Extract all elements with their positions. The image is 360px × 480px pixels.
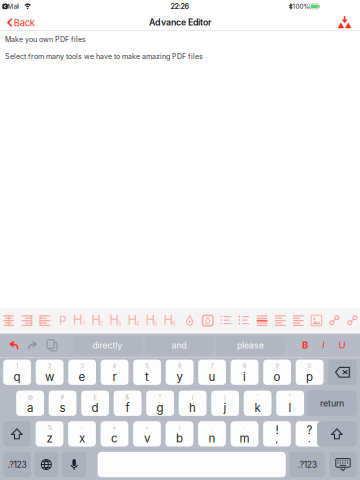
staticText: x xyxy=(79,431,85,445)
staticText: H xyxy=(127,312,137,328)
button[interactable]: - xyxy=(68,421,96,446)
button[interactable]: Shift xyxy=(317,421,357,446)
button[interactable]: ; xyxy=(198,421,226,446)
button[interactable]: Format option 5 xyxy=(73,310,90,331)
staticText: 4 xyxy=(113,363,117,370)
button[interactable]: Hide keyboard xyxy=(329,452,357,477)
button[interactable]: Next keyboard xyxy=(34,452,58,477)
button[interactable]: Numbers xyxy=(3,452,31,477)
button[interactable]: Shift xyxy=(3,421,31,446)
staticText: " xyxy=(289,394,292,401)
button[interactable]: and xyxy=(145,336,213,355)
button[interactable]: Return xyxy=(307,391,357,416)
staticText: r xyxy=(113,370,117,384)
staticText: % xyxy=(47,424,52,431)
button[interactable]: ( xyxy=(179,391,206,416)
staticText: # xyxy=(61,394,65,401)
staticText: i xyxy=(243,370,246,384)
staticText: 3 xyxy=(81,363,84,370)
button[interactable]: 3 xyxy=(68,360,96,385)
button[interactable]: # xyxy=(49,391,76,416)
button[interactable]: Format option 7 xyxy=(109,310,126,331)
button[interactable]: ) xyxy=(211,391,239,416)
button[interactable]: Format option 4 xyxy=(54,310,71,331)
button[interactable]: = xyxy=(133,421,161,446)
button[interactable]: & xyxy=(114,391,141,416)
button[interactable]: Undo xyxy=(4,336,22,354)
staticText: + xyxy=(112,424,116,431)
staticText: v xyxy=(144,431,150,445)
button[interactable]: Format option 20 xyxy=(344,310,360,331)
button[interactable]: U xyxy=(334,336,350,354)
staticText: s xyxy=(60,401,66,415)
staticText: H xyxy=(164,312,174,328)
button[interactable]: I xyxy=(315,336,331,354)
button[interactable]: Format option 13 xyxy=(217,310,234,331)
button[interactable]: 5 xyxy=(133,360,161,385)
button[interactable]: " xyxy=(276,391,304,416)
button[interactable]: Format option 12 xyxy=(199,310,216,331)
button[interactable]: Paste xyxy=(43,336,61,354)
button[interactable]: 4 xyxy=(101,360,128,385)
button[interactable]: please xyxy=(216,336,285,355)
button[interactable]: Format option 3 xyxy=(36,310,53,331)
button[interactable]: + xyxy=(101,421,128,446)
staticText: e xyxy=(79,370,86,384)
staticText: 1 xyxy=(82,320,84,327)
button[interactable]: Format option 15 xyxy=(254,310,271,331)
button[interactable]: Format option 2 xyxy=(18,310,35,331)
staticText: y xyxy=(177,370,183,384)
button[interactable]: Format option 8 xyxy=(127,310,144,331)
staticText: m xyxy=(239,431,249,445)
button[interactable]: Format option 1 xyxy=(0,310,17,331)
button[interactable]: 9 xyxy=(263,360,291,385)
button[interactable]: 1 xyxy=(3,360,31,385)
staticText: . xyxy=(308,433,311,445)
staticText: d xyxy=(92,401,99,415)
button[interactable]: 0 xyxy=(296,360,323,385)
staticText: directly xyxy=(93,340,123,351)
staticText: a xyxy=(27,401,33,415)
button[interactable]: Format option 11 xyxy=(181,310,198,331)
button[interactable]: Numbers xyxy=(289,452,325,477)
button[interactable]: 2 xyxy=(36,360,63,385)
button[interactable]: : xyxy=(231,421,258,446)
button[interactable]: directly xyxy=(73,336,142,355)
button[interactable]: ' xyxy=(244,391,271,416)
button[interactable]: 8 xyxy=(231,360,258,385)
button[interactable]: @ xyxy=(16,391,44,416)
staticText: o xyxy=(274,370,281,384)
button[interactable]: Format option 6 xyxy=(91,310,108,331)
button[interactable]: Format option 17 xyxy=(290,310,307,331)
button[interactable]: Format option 10 xyxy=(163,310,180,331)
button[interactable]: B xyxy=(297,336,313,354)
staticText: and xyxy=(172,340,187,351)
button[interactable]: Dictation xyxy=(62,452,86,477)
staticText: : xyxy=(243,424,245,431)
button[interactable]: Delete xyxy=(328,360,357,385)
button[interactable]: Redo xyxy=(24,336,42,354)
button[interactable]: Back xyxy=(3,14,37,31)
button[interactable]: 7 xyxy=(198,360,226,385)
button[interactable]: £ xyxy=(81,391,109,416)
button[interactable]: % xyxy=(36,421,63,446)
button[interactable]: * xyxy=(146,391,174,416)
button[interactable]: Space xyxy=(98,452,286,477)
button[interactable]: / xyxy=(166,421,193,446)
staticText: b xyxy=(176,431,183,445)
button[interactable]: Format option 9 xyxy=(145,310,162,331)
button[interactable]: ? xyxy=(296,421,323,446)
button[interactable]: Format option 18 xyxy=(308,310,325,331)
staticText: ( xyxy=(192,394,194,401)
staticText: h xyxy=(189,401,196,415)
staticText: 8 xyxy=(243,363,246,370)
staticText: ! xyxy=(275,423,278,437)
button[interactable]: Format option 14 xyxy=(235,310,252,331)
button[interactable]: Format option 16 xyxy=(272,310,289,331)
button[interactable]: Merge PDF xyxy=(337,16,352,28)
button[interactable]: 6 xyxy=(166,360,193,385)
staticText: Make you own PDF files xyxy=(5,35,86,44)
button[interactable]: Format option 19 xyxy=(326,310,343,331)
staticText: .?123 xyxy=(8,459,27,470)
button[interactable]: ! xyxy=(263,421,291,446)
